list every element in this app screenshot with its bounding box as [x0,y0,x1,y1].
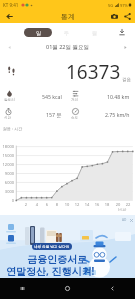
staticText: 97% [120,3,128,8]
staticText: 16 [91,202,103,207]
staticText: 월 [92,30,97,36]
staticText: AD [122,218,127,222]
staticText: 16373 [66,59,121,85]
button[interactable]: 주 [52,28,80,37]
button[interactable]: Previous day [2,40,16,54]
staticText: 10.48 km [107,93,130,100]
button[interactable]: 속도 [67,105,135,123]
staticText: 통계 [61,12,75,21]
staticText: 12 [71,202,83,207]
staticText: 걸음 [122,77,131,83]
button[interactable]: 거리 [67,87,135,105]
button[interactable]: Back [2,10,16,23]
button[interactable]: Close ad [129,218,133,222]
staticText: 속도 [71,116,79,121]
staticText: 시간 [4,116,12,121]
staticText: (시간) [118,208,127,212]
staticText: 거리 [71,98,79,103]
staticText: 18000 [0,144,14,149]
staticText: 545 kcal [42,93,62,100]
staticText: 일 [36,30,41,36]
button[interactable]: Download [115,25,129,39]
staticText: 22 [122,202,134,207]
staticText: 12000 [0,162,14,167]
staticText: 8 [51,202,63,207]
staticText: KT 9:41 [3,2,19,8]
button[interactable]: 일 [24,28,52,37]
staticText: 18 [101,202,113,207]
button[interactable]: 시간 [0,105,67,123]
button[interactable]: Share [121,10,134,23]
button[interactable]: 새해 선물 받고 싶다면 [0,215,135,278]
staticText: 3000 [0,189,14,194]
staticText: 157 분 [46,111,62,118]
staticText: 새해 선물 받고 싶다면 [34,244,70,249]
staticText: 6000 [0,180,14,185]
staticText: 0 [0,198,14,203]
button[interactable]: 월 [80,28,108,37]
staticText: 걸음 : 시간 [3,126,23,131]
button[interactable]: Home [45,278,90,299]
staticText: 6 [41,202,53,207]
button[interactable]: Camera [108,10,121,23]
button[interactable]: 칼로리 [0,87,67,105]
staticText: 칼로리 [4,98,15,103]
staticText: 4 [31,202,43,207]
staticText: 15000 [0,153,14,158]
staticText: 5G [108,3,114,8]
button[interactable]: Recent apps [0,278,45,299]
staticText: 14 [81,202,93,207]
staticText: 20 [112,202,124,207]
staticText: 금융인증서로 [27,253,87,266]
staticText: 2.75 km/h [105,111,130,118]
button[interactable]: Back [90,278,135,299]
staticText: 01월 22일 월요일 [46,43,89,51]
staticText: 9000 [0,171,14,176]
staticText: 연말정산, 진행시켜! [6,264,95,278]
staticText: 2 [20,202,32,207]
button[interactable]: Next day [118,40,132,54]
staticText: 10 [61,202,73,207]
staticText: 주 [64,30,69,36]
